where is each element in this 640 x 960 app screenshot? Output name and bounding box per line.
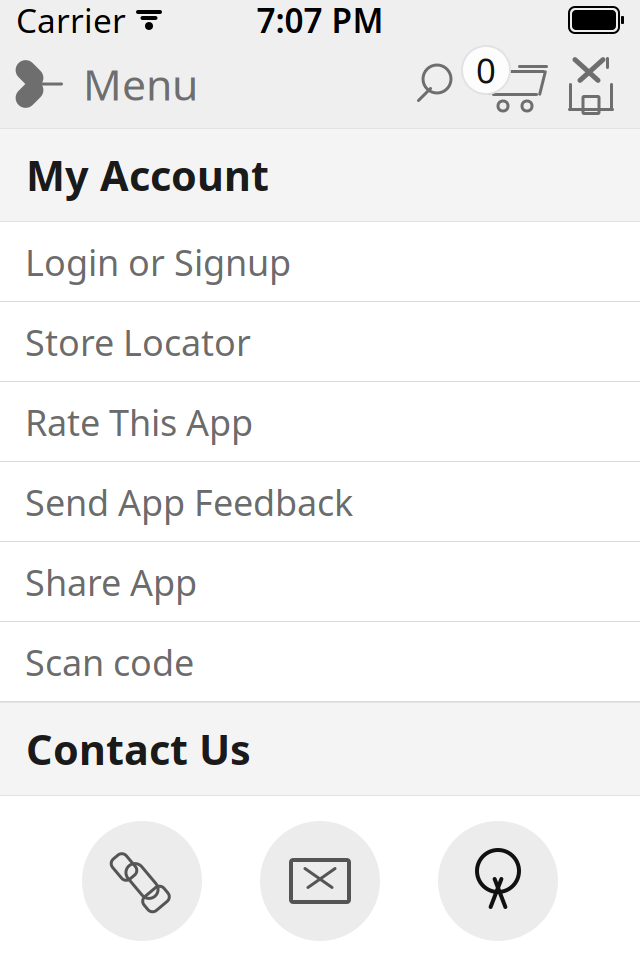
button[interactable]: Rate This App [0, 382, 640, 462]
button[interactable]: Search [404, 56, 460, 112]
staticText: Menu [83, 56, 198, 112]
staticText: Rate This App [25, 398, 253, 446]
staticText: Contact Us [26, 722, 251, 776]
staticText: Carrier [16, 0, 126, 42]
staticText: My Account [26, 148, 269, 202]
button[interactable]: Find a store [438, 821, 558, 941]
button[interactable]: Email us [260, 821, 380, 941]
button[interactable]: Store Locator [0, 302, 640, 382]
button[interactable]: Scan code [0, 622, 640, 702]
staticText: Login or Signup [25, 238, 291, 286]
button[interactable]: Send App Feedback [0, 462, 640, 542]
staticText: Store Locator [25, 318, 251, 366]
button[interactable]: Home [556, 54, 640, 114]
button[interactable]: Cart, 0 items [460, 51, 556, 117]
staticText: 7:07 PM [256, 0, 383, 42]
button[interactable]: Login or Signup [0, 222, 640, 302]
button[interactable]: Share App [0, 542, 640, 622]
staticText: 0 [476, 47, 496, 93]
staticText: Send App Feedback [25, 478, 353, 526]
staticText: Share App [25, 558, 197, 606]
button[interactable]: Call us [82, 821, 202, 941]
staticText: Scan code [25, 638, 194, 686]
button[interactable]: Back [0, 42, 198, 126]
